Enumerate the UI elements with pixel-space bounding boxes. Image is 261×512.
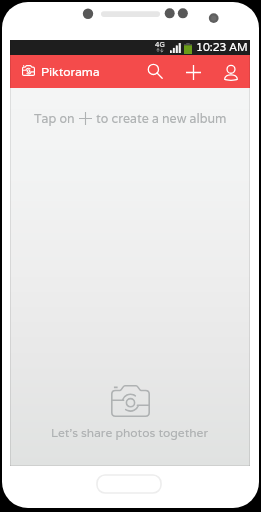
staticText: 10:23 AM — [196, 40, 248, 54]
staticText: Tap on — [34, 110, 75, 126]
button[interactable]: Create album — [179, 58, 207, 86]
staticText: 4G — [155, 40, 165, 49]
staticText: Piktorama — [41, 64, 100, 80]
staticText: to create a new album — [96, 110, 227, 126]
staticText: Let's share photos together — [51, 425, 209, 441]
button[interactable]: Profile — [217, 58, 245, 86]
button[interactable]: Search — [141, 57, 169, 85]
